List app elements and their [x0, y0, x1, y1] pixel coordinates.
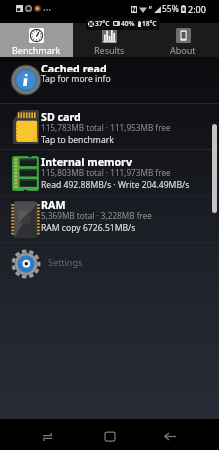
staticText: Benchmark	[12, 44, 61, 56]
staticText: 115,803MB total · 111,973MB free	[41, 167, 171, 178]
staticText: 18°C	[142, 19, 157, 28]
button[interactable]: RAM	[0, 197, 219, 242]
button[interactable]: SD card	[0, 104, 219, 149]
staticText: 40%	[121, 19, 135, 28]
button[interactable]: Back	[151, 421, 189, 450]
staticText: RAM	[41, 198, 66, 209]
staticText: Cached read	[41, 62, 107, 72]
staticText: About	[170, 44, 196, 56]
staticText: Results	[94, 44, 125, 56]
button[interactable]: About	[146, 23, 219, 57]
staticText: Settings	[48, 256, 83, 268]
button[interactable]: Internal memory	[0, 150, 219, 196]
button[interactable]: Settings	[0, 243, 219, 285]
button[interactable]: Results	[73, 23, 146, 57]
staticText: SD card	[41, 110, 81, 121]
staticText: Tap for more info	[41, 73, 111, 85]
button[interactable]: Benchmark	[0, 23, 73, 57]
staticText: Tap to benchmark	[41, 134, 114, 146]
staticText: Internal memory	[41, 155, 132, 166]
staticText: 115,783MB total · 111,953MB free	[41, 122, 171, 133]
staticText: 5,369MB total · 3,228MB free	[41, 210, 152, 221]
staticText: 37°C	[95, 19, 110, 28]
button[interactable]: Cached read	[0, 57, 219, 103]
staticText: RAM copy 6726.51MB/s	[41, 222, 136, 234]
staticText: Read 492.88MB/s · Write 204.49MB/s	[41, 179, 190, 191]
staticText: 2:00	[188, 3, 206, 15]
staticText: 55%	[162, 3, 179, 15]
button[interactable]: Home	[91, 421, 129, 450]
button[interactable]: Recent apps	[28, 421, 66, 450]
